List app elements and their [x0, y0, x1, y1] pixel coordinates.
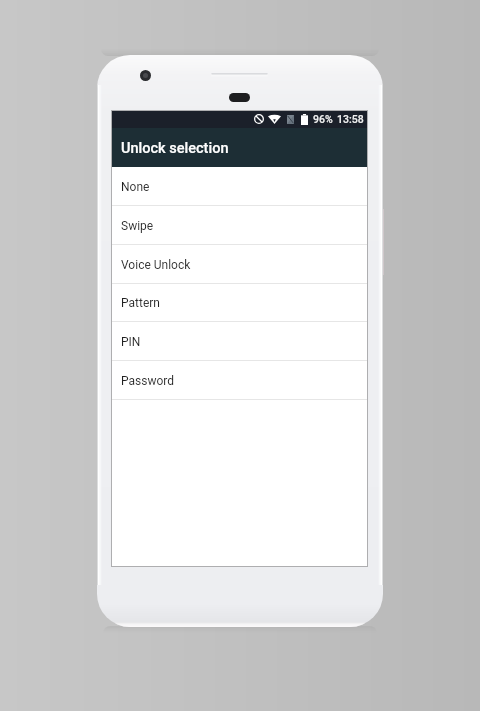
other: Do not disturb [254, 114, 264, 124]
other: Wi-Fi [268, 114, 281, 124]
button[interactable]: Pattern [111, 284, 368, 322]
staticText: Password [121, 374, 175, 388]
button[interactable]: Voice Unlock [111, 245, 368, 284]
staticText: 13:58 [337, 113, 364, 125]
staticText: PIN [121, 335, 141, 349]
staticText: Unlock selection [121, 140, 229, 157]
button[interactable]: Swipe [111, 206, 368, 245]
button[interactable]: None [111, 167, 368, 206]
staticText: Voice Unlock [121, 258, 191, 272]
button[interactable]: Password [111, 361, 368, 400]
button[interactable]: Unlock selection [111, 128, 368, 167]
staticText: None [121, 180, 150, 194]
staticText: 96% [313, 113, 333, 125]
staticText: Pattern [121, 296, 160, 310]
other: Signal [287, 115, 294, 124]
button[interactable]: PIN [111, 322, 368, 361]
other: Battery [301, 114, 308, 125]
staticText: Swipe [121, 219, 154, 233]
